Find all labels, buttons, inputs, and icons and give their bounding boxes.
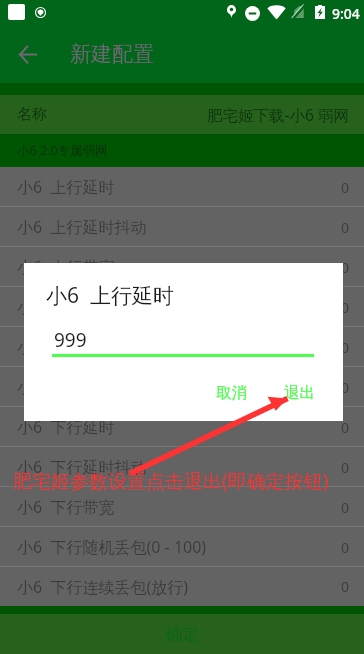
staticText: 肥宅姬下载-小6 弱网	[207, 104, 349, 125]
button[interactable]: 小6 下行延时抖动	[0, 447, 364, 487]
staticText: 0	[341, 577, 350, 596]
staticText: 0	[341, 378, 350, 397]
staticText: 名称	[17, 105, 47, 124]
staticText: 999	[54, 327, 87, 353]
staticText: 肥宅姬参数设置点击退出(即确定按钮)	[13, 468, 329, 494]
button[interactable]: 小6 上行乱序	[0, 367, 364, 407]
staticText: 小6 上行延时	[46, 281, 174, 310]
staticText: 新建配置	[70, 41, 154, 67]
staticText: 确定	[165, 624, 199, 645]
staticText: 0	[341, 498, 350, 517]
staticText: 9:04	[332, 4, 360, 23]
button[interactable]: 小6 上行连续丢包(放行)	[0, 327, 364, 367]
staticText: 小6 上行随机丢包(0 - 100)	[17, 296, 207, 318]
staticText: 0	[341, 178, 350, 197]
button[interactable]: 小6 下行带宽	[0, 487, 364, 527]
staticText: 0	[341, 258, 350, 277]
staticText: 小6 2.0专属弱网	[17, 142, 108, 159]
staticText: 0	[341, 538, 350, 557]
staticText: 小6 下行连续丢包(放行)	[17, 576, 189, 598]
button[interactable]: 小6 下行连续丢包(放行)	[0, 567, 364, 606]
button[interactable]: 小6 上行延时	[0, 167, 364, 207]
button[interactable]: 小6 上行延时抖动	[0, 207, 364, 247]
staticText: 0	[341, 218, 350, 237]
staticText: 小6 上行延时抖动	[17, 216, 147, 238]
staticText: 小6 下行延时抖动	[17, 456, 147, 478]
button[interactable]: Back	[7, 34, 48, 75]
staticText: 小6 上行延时	[17, 176, 115, 198]
button[interactable]: 取消	[201, 375, 261, 411]
button[interactable]: 小6 上行随机丢包(0 - 100)	[0, 287, 364, 327]
button[interactable]: 小6 上行带宽	[0, 247, 364, 287]
button[interactable]: 名称	[0, 95, 364, 134]
staticText: 小6 上行乱序	[17, 376, 115, 398]
button[interactable]: 退出	[269, 375, 329, 411]
staticText: 0	[341, 338, 350, 357]
staticText: 取消	[216, 383, 247, 403]
staticText: 0	[341, 298, 350, 317]
staticText: 0	[341, 418, 350, 437]
staticText: 0	[341, 458, 350, 477]
staticText: 小6 下行随机丢包(0 - 100)	[17, 536, 207, 558]
staticText: 小6 下行带宽	[17, 496, 115, 518]
button[interactable]: 小6 下行随机丢包(0 - 100)	[0, 527, 364, 567]
staticText: 小6 上行连续丢包(放行)	[17, 336, 189, 358]
staticText: 小6 上行带宽	[17, 256, 115, 278]
staticText: 小6 下行延时	[17, 416, 115, 438]
button[interactable]: 小6 下行延时	[0, 407, 364, 447]
staticText: 退出	[284, 383, 315, 403]
